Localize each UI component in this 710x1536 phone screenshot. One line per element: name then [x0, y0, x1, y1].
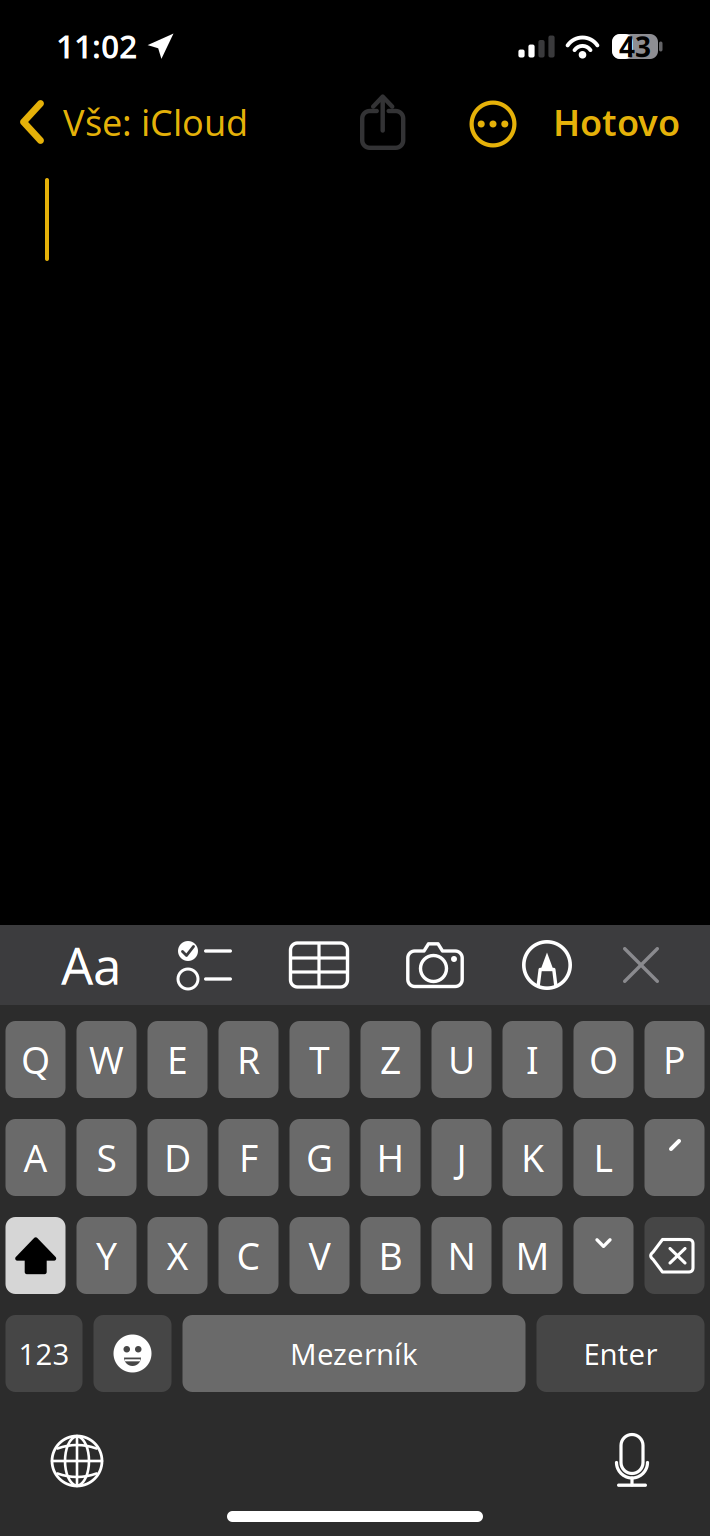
- button[interactable]: R: [218, 1021, 278, 1098]
- staticText: Z: [380, 1035, 401, 1084]
- button[interactable]: Vše: iCloud: [0, 86, 258, 158]
- button[interactable]: V: [289, 1217, 349, 1294]
- button[interactable]: Shift: [5, 1217, 65, 1294]
- button[interactable]: E: [147, 1021, 207, 1098]
- button[interactable]: G: [289, 1119, 349, 1196]
- staticText: R: [237, 1035, 260, 1084]
- staticText: W: [89, 1035, 124, 1084]
- button[interactable]: N: [431, 1217, 491, 1294]
- staticText: Vše: iCloud: [63, 98, 248, 146]
- staticText: 11:02: [56, 25, 137, 67]
- button[interactable]: S: [76, 1119, 136, 1196]
- button[interactable]: C: [218, 1217, 278, 1294]
- staticText: Q: [21, 1035, 50, 1084]
- button[interactable]: U: [431, 1021, 491, 1098]
- button[interactable]: D: [147, 1119, 207, 1196]
- staticText: O: [589, 1035, 618, 1084]
- staticText: G: [306, 1133, 333, 1182]
- button[interactable]: Mezerník: [182, 1315, 525, 1392]
- button[interactable]: Kresba: [502, 925, 592, 1005]
- button[interactable]: M: [502, 1217, 562, 1294]
- staticText: D: [164, 1133, 191, 1182]
- button[interactable]: W: [76, 1021, 136, 1098]
- button[interactable]: Hotovo: [539, 86, 694, 158]
- button[interactable]: Seznam: [160, 925, 250, 1005]
- staticText: C: [236, 1231, 260, 1280]
- staticText: B: [378, 1231, 402, 1280]
- staticText: Mezerník: [290, 1334, 418, 1373]
- button[interactable]: O: [573, 1021, 633, 1098]
- button[interactable]: Enter: [536, 1315, 704, 1392]
- button[interactable]: Zavřít: [596, 925, 686, 1005]
- staticText: Enter: [583, 1334, 657, 1373]
- staticText: S: [96, 1133, 116, 1182]
- staticText: P: [663, 1035, 686, 1084]
- button[interactable]: Y: [76, 1217, 136, 1294]
- button[interactable]: Formát: [46, 925, 136, 1005]
- staticText: U: [448, 1035, 475, 1084]
- button[interactable]: X: [147, 1217, 207, 1294]
- staticText: N: [447, 1231, 475, 1280]
- staticText: Aa: [61, 931, 121, 999]
- staticText: T: [309, 1035, 330, 1084]
- button[interactable]: T: [289, 1021, 349, 1098]
- staticText: M: [515, 1231, 549, 1280]
- staticText: I: [526, 1035, 539, 1084]
- staticText: K: [521, 1133, 544, 1182]
- staticText: V: [308, 1231, 330, 1280]
- button[interactable]: Q: [5, 1021, 65, 1098]
- button[interactable]: Smazat: [644, 1217, 704, 1294]
- button[interactable]: P: [644, 1021, 704, 1098]
- button[interactable]: H: [360, 1119, 420, 1196]
- button[interactable]: Další klávesnice: [29, 1430, 125, 1492]
- staticText: H: [376, 1133, 404, 1182]
- button[interactable]: I: [502, 1021, 562, 1098]
- staticText: J: [456, 1133, 466, 1182]
- button[interactable]: Čárka: [644, 1119, 704, 1196]
- button[interactable]: Sdílet: [351, 86, 415, 158]
- staticText: A: [23, 1133, 47, 1182]
- button[interactable]: Fotoaparát: [390, 925, 480, 1005]
- button[interactable]: K: [502, 1119, 562, 1196]
- button[interactable]: A: [5, 1119, 65, 1196]
- button[interactable]: 123: [5, 1315, 82, 1392]
- button[interactable]: L: [573, 1119, 633, 1196]
- staticText: Y: [96, 1231, 117, 1280]
- staticText: L: [593, 1133, 613, 1182]
- button[interactable]: Tabulka: [274, 925, 364, 1005]
- button[interactable]: Diktovat: [584, 1430, 680, 1492]
- button[interactable]: Háček: [573, 1217, 633, 1294]
- button[interactable]: Z: [360, 1021, 420, 1098]
- staticText: F: [239, 1133, 258, 1182]
- staticText: X: [166, 1231, 188, 1280]
- staticText: 43: [619, 28, 651, 65]
- staticText: 123: [18, 1334, 69, 1373]
- staticText: E: [167, 1035, 188, 1084]
- button[interactable]: Další: [461, 84, 525, 160]
- staticText: Hotovo: [553, 98, 680, 146]
- button[interactable]: J: [431, 1119, 491, 1196]
- button[interactable]: Emoji: [93, 1315, 171, 1392]
- button[interactable]: F: [218, 1119, 278, 1196]
- button[interactable]: B: [360, 1217, 420, 1294]
